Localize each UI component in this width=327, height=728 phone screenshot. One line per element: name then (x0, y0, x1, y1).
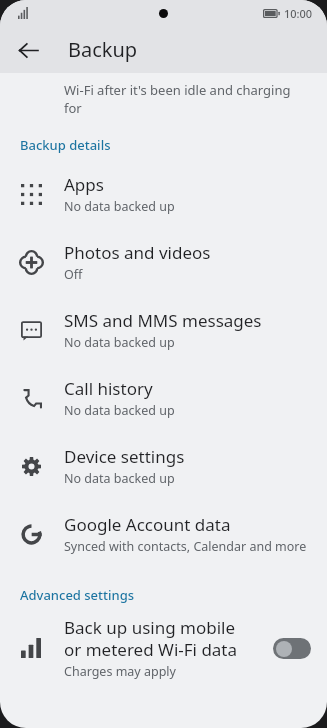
button[interactable]: SMS and MMS messages (0, 296, 327, 364)
button[interactable]: Back up using mobile or metered Wi-Fi da… (273, 638, 311, 659)
staticText: Google Account data (64, 513, 231, 536)
button[interactable]: Call history (0, 364, 327, 432)
staticText: No data backed up (64, 198, 175, 215)
staticText: Backup details (20, 136, 111, 154)
staticText: Charges may apply (64, 663, 176, 680)
staticText: SMS and MMS messages (64, 309, 262, 332)
staticText: Call history (64, 377, 153, 400)
staticText: Off (64, 266, 83, 283)
staticText: Back up using mobile or metered Wi-Fi da… (64, 616, 238, 661)
button[interactable]: Back (8, 30, 48, 70)
staticText: No data backed up (64, 334, 175, 351)
staticText: Advanced settings (20, 586, 135, 604)
button[interactable]: Google Account data (0, 500, 327, 568)
button[interactable]: Back up using mobile or metered Wi-Fi da… (0, 610, 327, 686)
staticText: Device settings (64, 445, 185, 468)
staticText: Photos and videos (64, 241, 211, 264)
button[interactable]: Apps (0, 160, 327, 228)
button[interactable]: Photos and videos (0, 228, 327, 296)
staticText: Wi-Fi after it's been idle and charging … (64, 81, 311, 118)
staticText: Synced with contacts, Calendar and more (64, 538, 307, 555)
button[interactable]: Device settings (0, 432, 327, 500)
staticText: Apps (64, 173, 104, 196)
staticText: 10:00 (284, 6, 313, 21)
staticText: Backup (68, 36, 138, 63)
staticText: No data backed up (64, 402, 175, 419)
staticText: No data backed up (64, 470, 175, 487)
